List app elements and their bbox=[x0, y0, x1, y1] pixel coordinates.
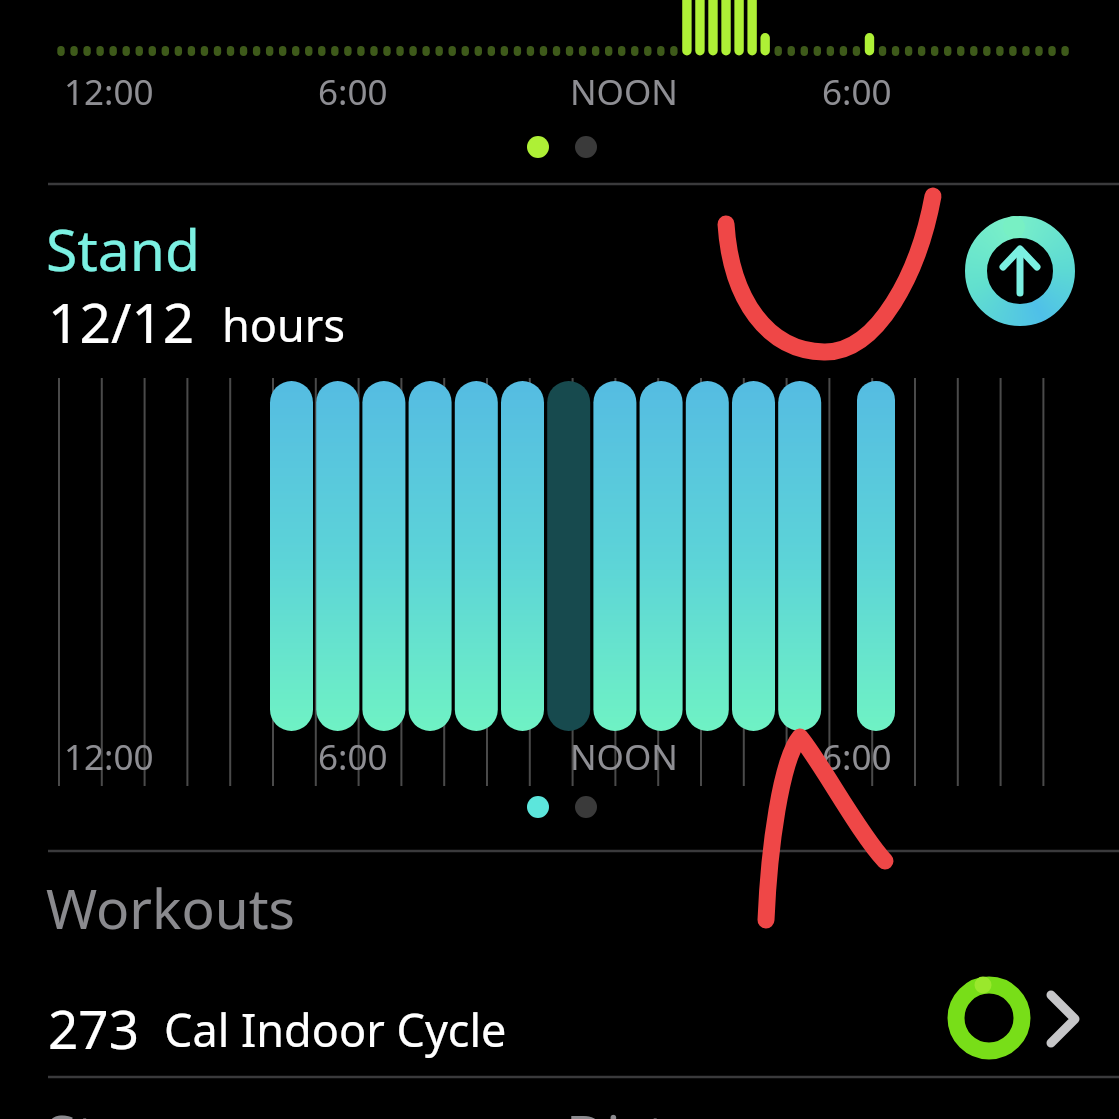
button[interactable]: 273 Cal Indoor Cycle workout bbox=[0, 960, 1119, 1077]
button[interactable]: Move chart bbox=[0, 0, 1119, 184]
button[interactable]: Stand 12 of 12 hours bbox=[0, 185, 1119, 851]
